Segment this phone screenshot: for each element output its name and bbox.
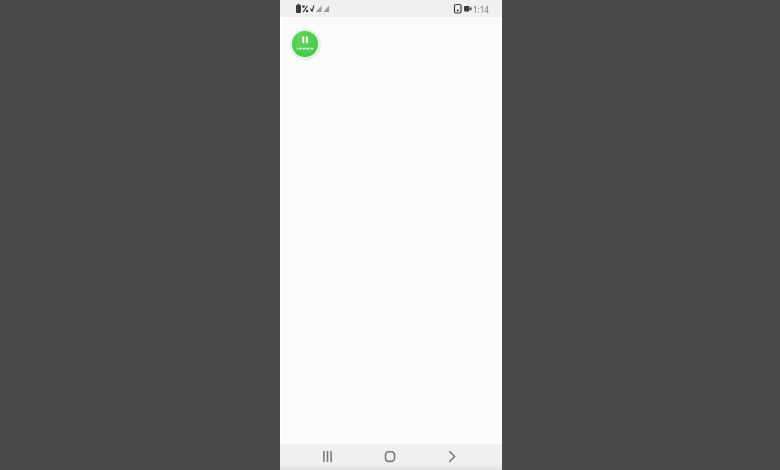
button[interactable] bbox=[440, 444, 466, 470]
button[interactable] bbox=[280, 444, 502, 470]
staticText: 1:14 bbox=[473, 4, 489, 15]
button[interactable] bbox=[292, 31, 318, 57]
button[interactable] bbox=[378, 444, 404, 470]
